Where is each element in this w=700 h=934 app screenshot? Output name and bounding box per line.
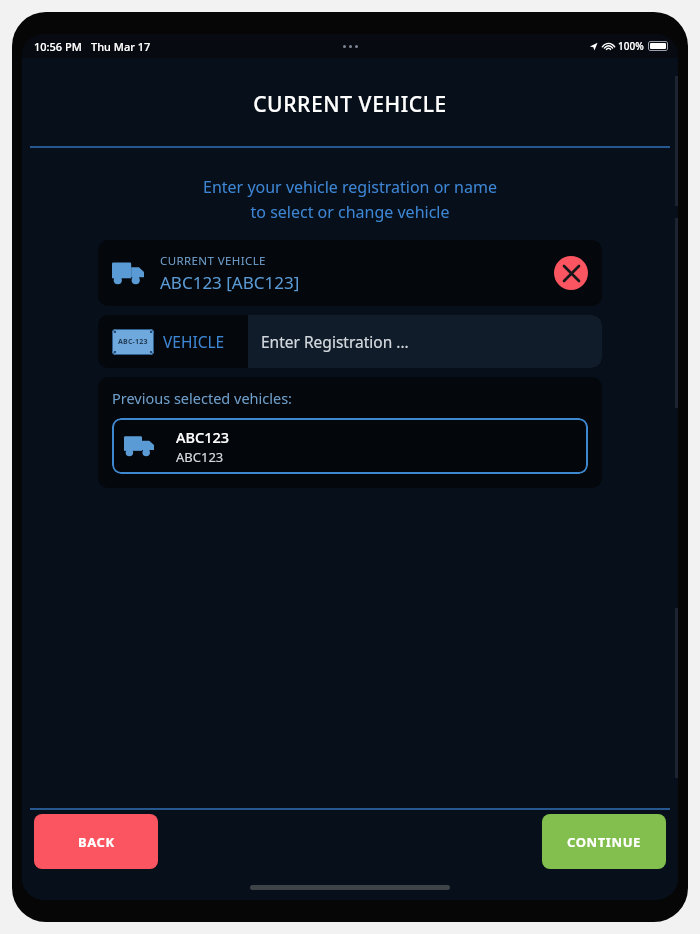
staticText: CURRENT VEHICLE	[22, 90, 678, 119]
staticText: BACK	[78, 833, 115, 851]
staticText: to select or change vehicle	[22, 201, 678, 223]
staticText: ABC123 [ABC123]	[160, 271, 300, 294]
staticText: Previous selected vehicles:	[112, 388, 292, 408]
staticText: 100%	[618, 39, 644, 53]
staticText: Enter your vehicle registration or name	[22, 176, 678, 198]
button[interactable]: ABC123	[112, 418, 588, 474]
staticText: ABC-123	[118, 337, 148, 347]
button[interactable]: Enter Registration ...	[248, 315, 602, 368]
staticText: ABC123	[176, 448, 224, 466]
staticText: CURRENT VEHICLE	[160, 253, 266, 269]
button[interactable]: ABC-123	[98, 315, 248, 368]
staticText: ABC123	[176, 427, 230, 447]
staticText: Enter Registration ...	[261, 331, 409, 352]
button[interactable]: Clear current vehicle	[554, 256, 588, 290]
staticText: Thu Mar 17	[91, 39, 151, 54]
staticText: 10:56 PM	[34, 39, 82, 54]
staticText: CONTINUE	[567, 833, 641, 851]
button[interactable]: CURRENT VEHICLE	[98, 240, 602, 306]
staticText: VEHICLE	[163, 331, 225, 352]
button[interactable]: BACK	[34, 814, 158, 869]
button[interactable]: CONTINUE	[542, 814, 666, 869]
